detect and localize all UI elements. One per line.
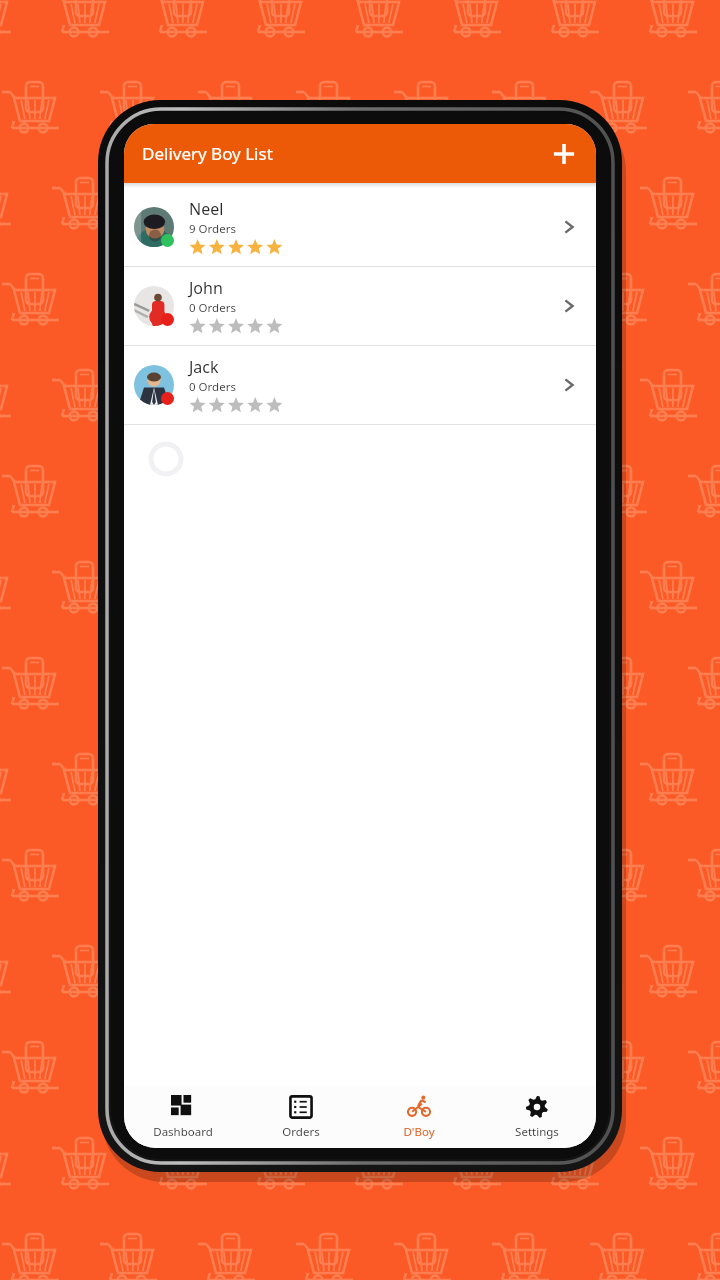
staticText: Neel xyxy=(189,198,224,220)
staticText: D'Boy xyxy=(403,1124,435,1140)
staticText: John xyxy=(189,277,223,299)
button[interactable]: John xyxy=(124,267,596,345)
button[interactable]: Orders xyxy=(242,1086,360,1148)
button[interactable]: Open John xyxy=(552,289,586,323)
button[interactable]: Open Neel xyxy=(552,210,586,244)
button[interactable]: Dashboard xyxy=(124,1086,242,1148)
button[interactable]: Settings xyxy=(478,1086,596,1148)
staticText: Settings xyxy=(515,1124,559,1140)
staticText: Orders xyxy=(282,1124,320,1140)
button[interactable]: Jack xyxy=(124,346,596,424)
staticText: Delivery Boy List xyxy=(142,142,273,165)
button[interactable]: Open Jack xyxy=(552,368,586,402)
staticText: 0 Orders xyxy=(189,300,236,316)
button[interactable]: Neel xyxy=(124,188,596,266)
staticText: Jack xyxy=(189,356,219,378)
staticText: 9 Orders xyxy=(189,221,236,237)
staticText: 0 Orders xyxy=(189,379,236,395)
button[interactable]: Add delivery boy xyxy=(542,132,586,176)
staticText: Dashboard xyxy=(153,1124,213,1140)
button[interactable]: D'Boy xyxy=(360,1086,478,1148)
